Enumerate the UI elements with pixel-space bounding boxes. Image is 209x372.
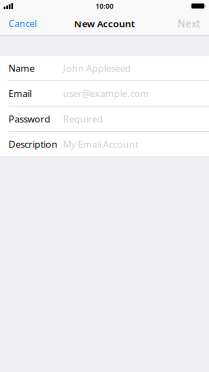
- staticText: Cancel: [9, 17, 37, 30]
- button[interactable]: Next: [170, 12, 209, 35]
- staticText: Description: [9, 138, 58, 150]
- button[interactable]: Email: [0, 81, 209, 106]
- staticText: Name: [9, 62, 35, 74]
- staticText: John Appleseed: [63, 62, 131, 74]
- staticText: Password: [9, 112, 51, 125]
- button[interactable]: Name: [0, 56, 209, 80]
- button[interactable]: Description: [0, 132, 209, 157]
- button[interactable]: Cancel: [0, 12, 44, 35]
- staticText: New Account: [74, 17, 135, 30]
- staticText: My Email Account: [63, 138, 138, 150]
- staticText: 10:00: [95, 1, 113, 11]
- staticText: Required: [63, 112, 103, 125]
- staticText: user@example.com: [63, 87, 149, 100]
- button[interactable]: Password: [0, 106, 209, 131]
- staticText: Email: [9, 87, 32, 100]
- staticText: Next: [177, 17, 200, 30]
